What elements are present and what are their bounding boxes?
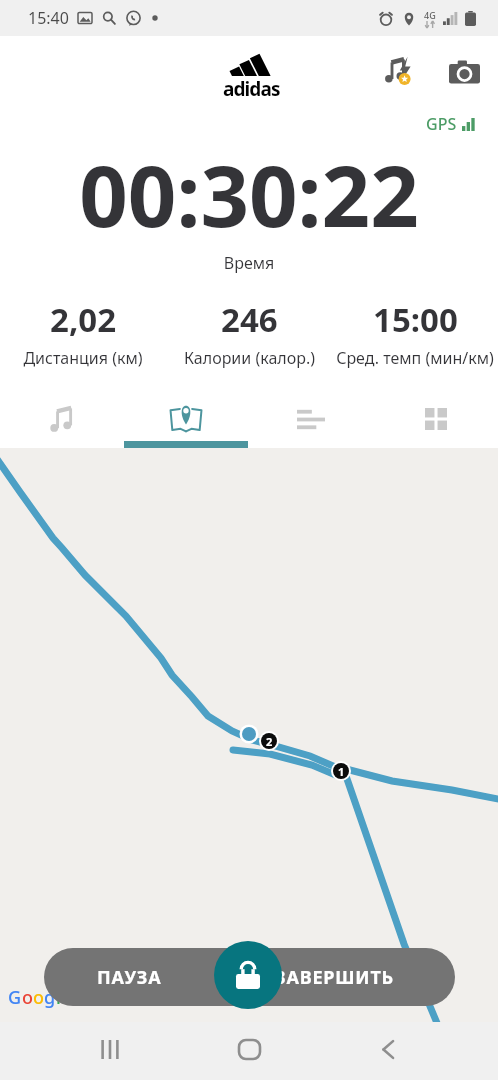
staticText: 1 bbox=[338, 764, 345, 779]
staticText: Время bbox=[0, 252, 498, 274]
button[interactable]: Grid tab bbox=[373, 386, 498, 448]
staticText: 246 bbox=[221, 297, 278, 342]
button[interactable]: Camera bbox=[442, 50, 486, 94]
button[interactable]: Recents bbox=[82, 1021, 138, 1077]
staticText: 15:40 bbox=[28, 7, 69, 29]
staticText: Сред. темп (мин/км) bbox=[336, 347, 494, 369]
button[interactable]: ПАУЗА bbox=[44, 948, 214, 1006]
staticText: GPS bbox=[426, 113, 457, 135]
staticText: 15:00 bbox=[373, 297, 458, 342]
staticText: o bbox=[22, 985, 33, 1010]
button[interactable]: List tab bbox=[248, 386, 373, 448]
staticText: Дистанция (км) bbox=[23, 347, 143, 369]
staticText: G bbox=[8, 985, 22, 1010]
staticText: o bbox=[33, 985, 44, 1010]
staticText: ПАУЗА bbox=[97, 965, 162, 990]
staticText: l bbox=[56, 985, 61, 1010]
staticText: 2,02 bbox=[50, 297, 117, 342]
staticText: ЗАВЕРШИТЬ bbox=[275, 965, 394, 990]
staticText: Калории (калор.) bbox=[184, 347, 315, 369]
button[interactable]: Music tab bbox=[0, 386, 124, 448]
button[interactable]: Back bbox=[360, 1021, 416, 1077]
button[interactable]: Music bbox=[376, 48, 420, 92]
button[interactable]: Home bbox=[221, 1021, 277, 1077]
button[interactable]: Lock bbox=[214, 941, 282, 1009]
staticText: 2 bbox=[266, 734, 273, 749]
button[interactable]: Map tab bbox=[124, 386, 248, 448]
button[interactable]: ЗАВЕРШИТЬ bbox=[214, 948, 455, 1006]
staticText: 00:30:22 bbox=[0, 136, 498, 252]
staticText: g bbox=[44, 985, 56, 1010]
staticText: e bbox=[61, 985, 72, 1010]
staticText: adidas bbox=[223, 76, 280, 102]
staticText: 4G bbox=[424, 9, 436, 21]
